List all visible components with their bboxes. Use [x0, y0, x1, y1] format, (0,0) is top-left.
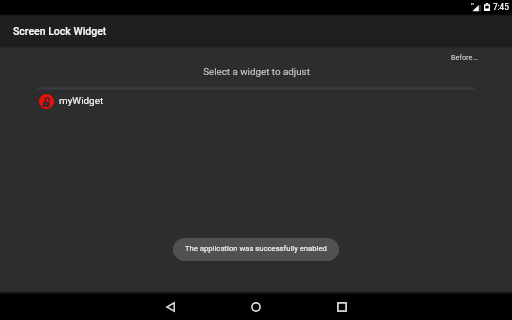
staticText: Select a widget to adjust	[203, 66, 310, 77]
button[interactable]: Recent apps	[320, 294, 364, 320]
staticText: The application was successfully enabled	[185, 244, 327, 253]
staticText: Screen Lock Widget	[13, 25, 107, 37]
button[interactable]: Back	[148, 294, 192, 320]
staticText: myWidget	[59, 95, 104, 107]
button[interactable]: Home	[234, 294, 278, 320]
button[interactable]: myWidget	[0, 89, 512, 113]
button[interactable]: Before...	[449, 51, 481, 64]
staticText: Before...	[451, 53, 479, 62]
staticText: 7:45	[493, 2, 509, 12]
